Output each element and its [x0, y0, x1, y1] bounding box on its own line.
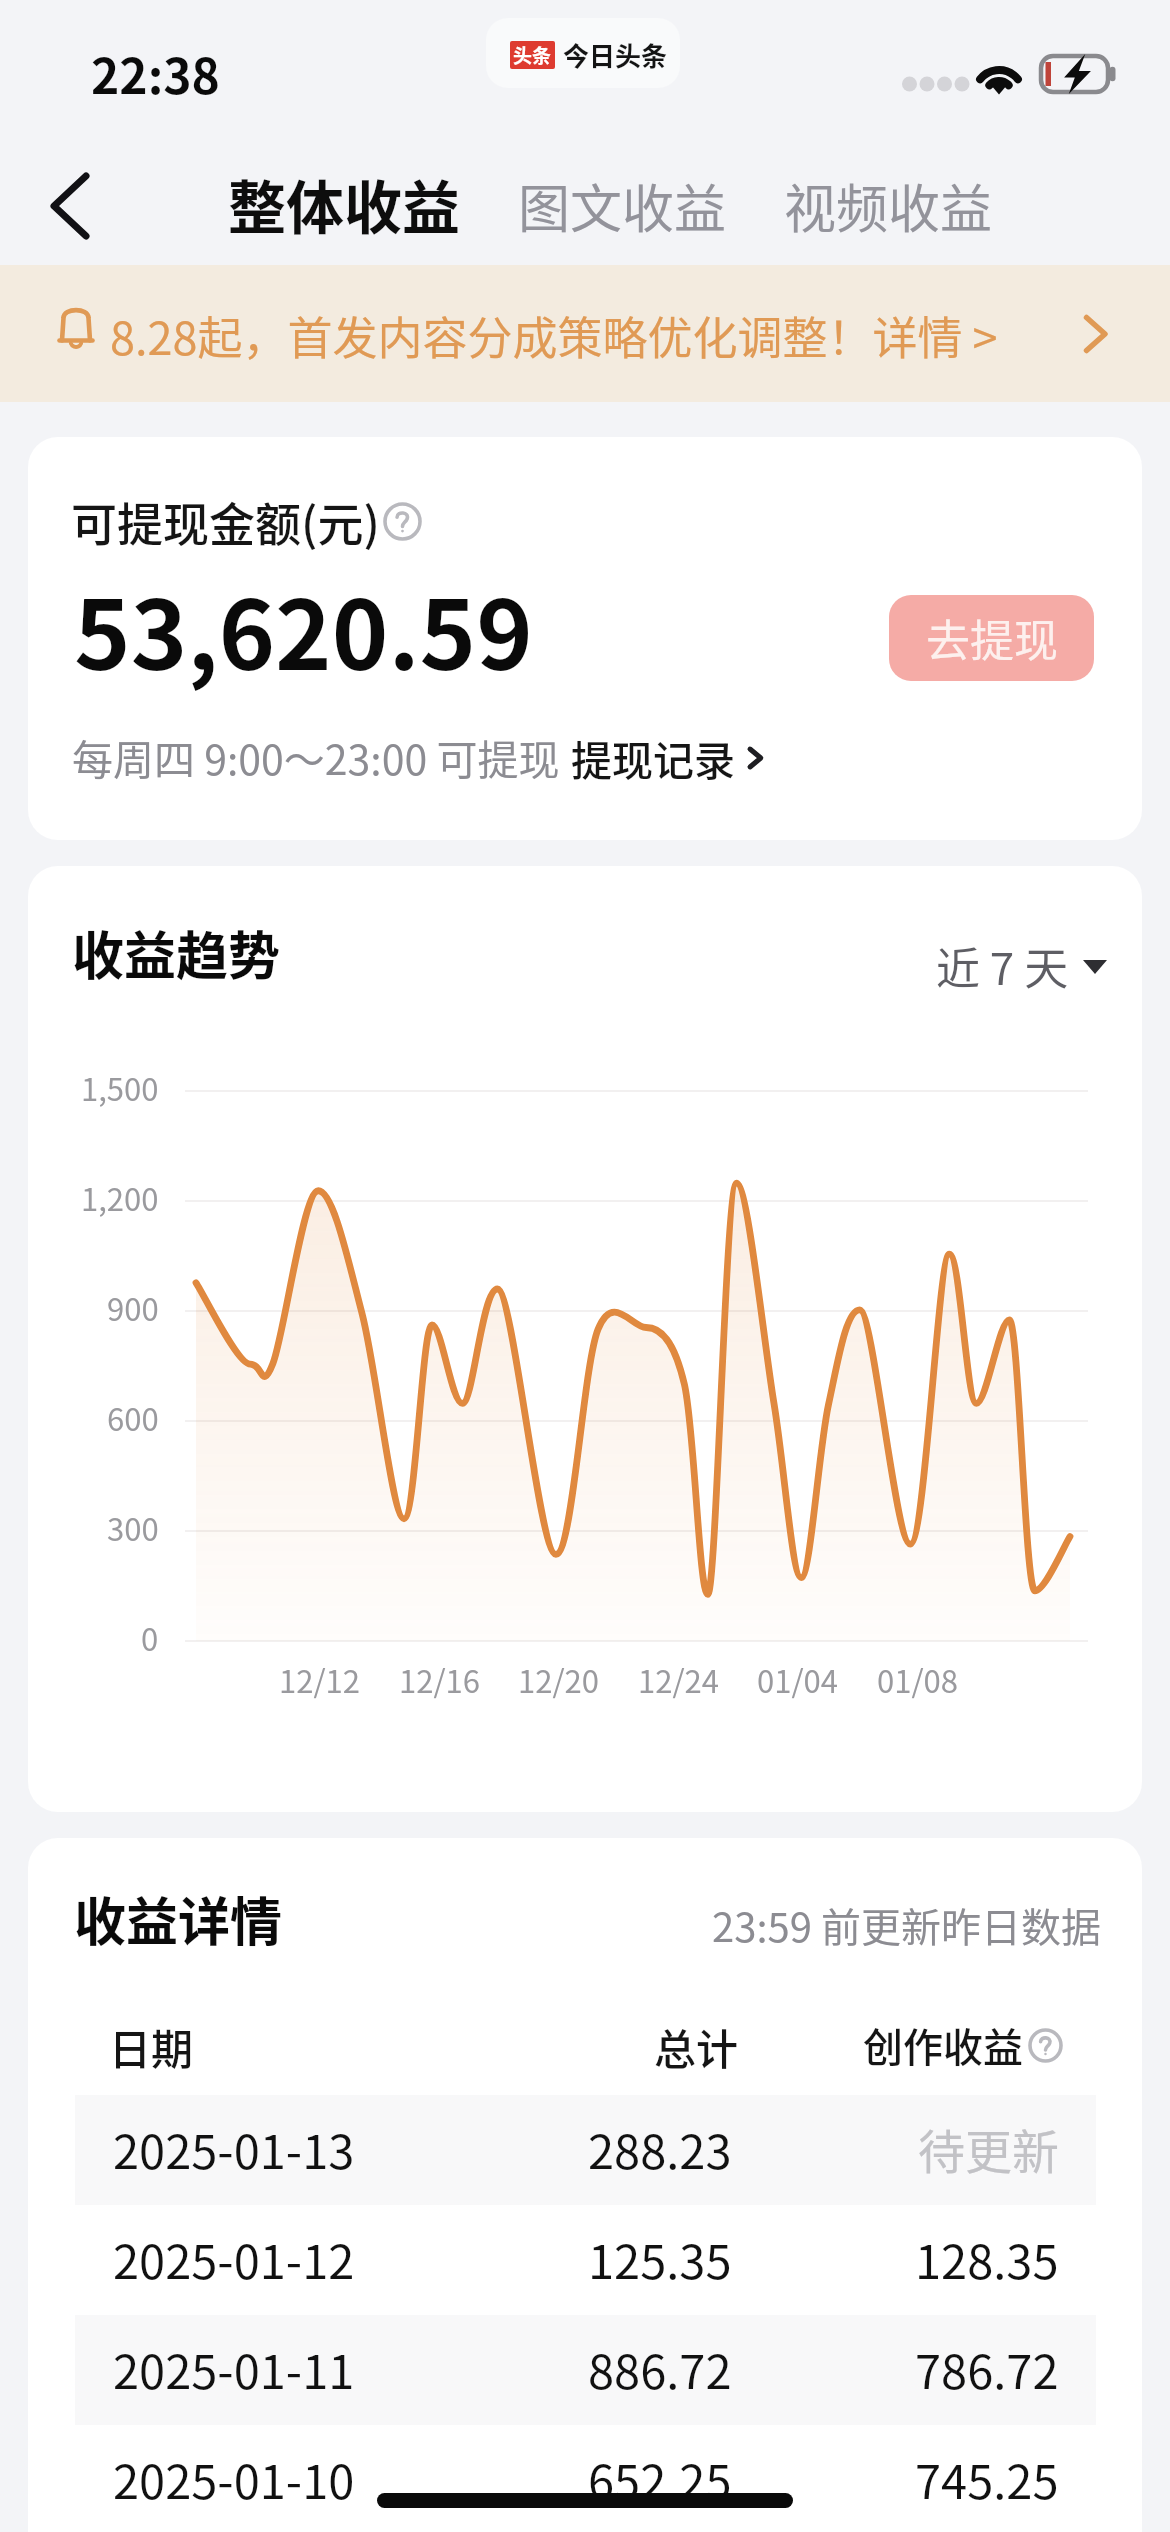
staticText: 23:59 前更新昨日数据	[712, 1896, 1101, 1954]
staticText: 今日头条	[563, 36, 668, 74]
button[interactable]: 8.28起，首发内容分成策略优化调整！详情 >	[0, 265, 1170, 402]
staticText: 头条	[513, 41, 552, 69]
staticText: 2025-01-10	[113, 2444, 355, 2512]
staticText: 786.72	[915, 2334, 1059, 2402]
staticText: 1,500	[81, 1065, 159, 1110]
staticText: 日期	[109, 2016, 194, 2077]
staticText: 待更新	[918, 2114, 1059, 2182]
staticText: 01/04	[757, 1657, 838, 1702]
staticText: 可提现金额(元)	[71, 488, 380, 555]
staticText: 300	[107, 1505, 159, 1550]
staticText: 652.25	[588, 2444, 732, 2512]
staticText: 0	[141, 1615, 159, 1660]
button[interactable]: 帮助	[382, 501, 422, 541]
button[interactable]: 返回	[24, 160, 116, 252]
staticText: 2025-01-13	[113, 2114, 355, 2182]
button[interactable]: 2025-01-11	[75, 2315, 1096, 2425]
button[interactable]: 2025-01-10	[75, 2425, 1096, 2532]
staticText: 2025-01-12	[113, 2224, 355, 2292]
staticText: 125.35	[588, 2224, 732, 2292]
staticText: 每周四 9:00～23:00 可提现	[72, 727, 560, 786]
staticText: 整体收益	[228, 162, 461, 246]
button[interactable]: 整体收益	[216, 152, 473, 256]
button[interactable]: 2025-01-13	[75, 2095, 1096, 2205]
staticText: 图文收益	[518, 168, 727, 243]
staticText: 12/12	[279, 1657, 360, 1702]
staticText: 去提现	[926, 606, 1058, 670]
staticText: 12/16	[399, 1657, 480, 1702]
button[interactable]: 提现记录	[565, 722, 777, 793]
staticText: 900	[107, 1285, 159, 1330]
staticText: 近 7 天	[936, 934, 1069, 998]
staticText: 总计	[654, 2016, 739, 2077]
staticText: 8.28起，首发内容分成策略优化调整！详情 >	[110, 303, 998, 368]
button[interactable]: 2025-01-12	[75, 2205, 1096, 2315]
button[interactable]: 去提现	[889, 595, 1094, 681]
staticText: 128.35	[915, 2224, 1059, 2292]
staticText: 01/08	[877, 1657, 958, 1702]
button[interactable]: 视频收益	[772, 158, 1005, 253]
staticText: 12/20	[518, 1657, 599, 1702]
staticText: 提现记录	[571, 728, 735, 787]
staticText: 2025-01-11	[113, 2334, 355, 2402]
staticText: 12/24	[638, 1657, 719, 1702]
staticText: 收益详情	[74, 1881, 283, 1956]
staticText: 745.25	[915, 2444, 1059, 2512]
staticText: 收益趋势	[72, 915, 281, 990]
staticText: 886.72	[588, 2334, 732, 2402]
staticText: 600	[107, 1395, 159, 1440]
staticText: 288.23	[588, 2114, 732, 2182]
staticText: 创作收益	[863, 2016, 1023, 2074]
button[interactable]: 图文收益	[506, 158, 739, 253]
button[interactable]: 帮助	[1026, 2026, 1064, 2064]
staticText: 1,200	[81, 1175, 159, 1220]
button[interactable]: 近 7 天	[936, 934, 1109, 998]
staticText: 22:38	[91, 38, 220, 108]
staticText: 视频收益	[784, 168, 993, 243]
staticText: 53,620.59	[74, 559, 533, 698]
